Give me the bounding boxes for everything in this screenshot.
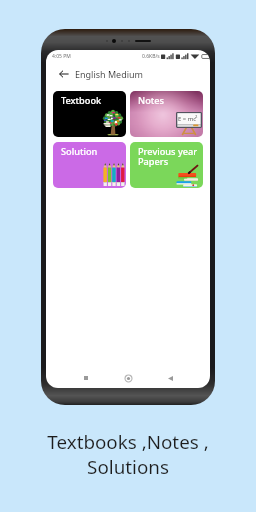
staticText: 0.6KB/s [142, 53, 160, 60]
staticText: Solution [61, 145, 98, 158]
button[interactable]: Recent apps [80, 372, 92, 384]
button[interactable]: Back [57, 67, 71, 81]
button[interactable]: Notes [130, 91, 203, 137]
staticText: Textbook [61, 94, 102, 107]
staticText: 4:05 PM [52, 53, 71, 60]
button[interactable]: Previous year Papers [130, 142, 203, 188]
button[interactable]: Solution [53, 142, 126, 188]
button[interactable]: Home [122, 372, 134, 384]
staticText: Textbooks ,Notes , Solutions [0, 429, 256, 479]
staticText: E = mc [178, 115, 197, 123]
staticText: Previous year Papers [138, 145, 198, 168]
staticText: 2 [195, 114, 198, 120]
button[interactable]: Textbook [53, 91, 126, 137]
staticText: Notes [138, 94, 165, 107]
staticText: English Medium [75, 68, 144, 80]
button[interactable]: Back [164, 372, 176, 384]
